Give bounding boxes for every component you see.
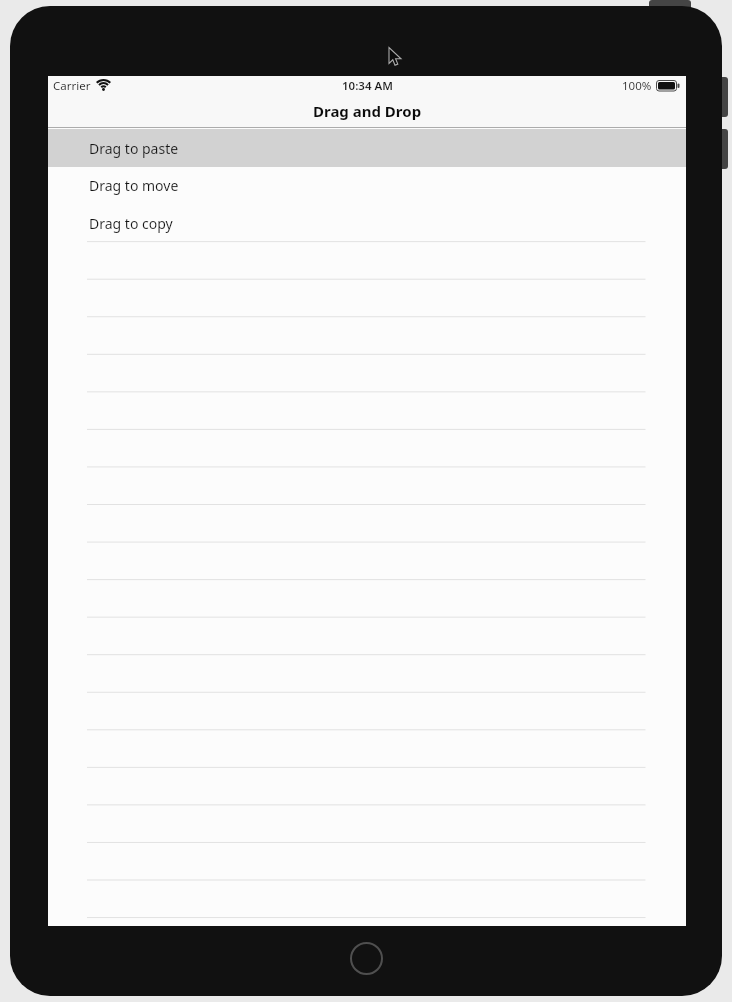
staticText: 100% bbox=[622, 78, 652, 94]
button[interactable]: Drag to move bbox=[48, 166, 686, 204]
button[interactable]: Drag to copy bbox=[48, 204, 686, 242]
button[interactable]: Drag to paste bbox=[48, 129, 686, 167]
staticText: Drag to copy bbox=[89, 214, 173, 233]
staticText: Drag to move bbox=[89, 176, 179, 195]
staticText: Drag and Drop bbox=[313, 101, 422, 121]
staticText: Carrier bbox=[53, 78, 91, 94]
staticText: Drag to paste bbox=[89, 139, 179, 158]
staticText: 10:34 AM bbox=[342, 78, 393, 94]
